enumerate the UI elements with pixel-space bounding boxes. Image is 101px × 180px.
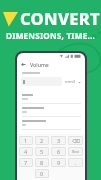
staticText: 0 <box>40 170 44 177</box>
button[interactable]: 9 <box>51 158 66 167</box>
staticText: 9 <box>57 159 61 166</box>
button[interactable]: mm3 <box>65 79 81 85</box>
button[interactable]: 1 <box>19 136 33 145</box>
staticText: 6 <box>57 148 61 155</box>
staticText: ⌫ <box>72 138 80 144</box>
button[interactable] <box>17 91 85 104</box>
staticText: 5 <box>40 148 44 155</box>
staticText: Volume <box>30 61 49 68</box>
button[interactable]: 2 <box>35 136 49 145</box>
button[interactable] <box>17 104 85 117</box>
staticText: Next <box>72 150 79 154</box>
other: Convert app logo <box>2 10 19 27</box>
button[interactable] <box>21 77 62 86</box>
button[interactable]: 3 <box>51 136 66 145</box>
button[interactable]: 8 <box>35 158 49 167</box>
button[interactable]: 7 <box>19 158 33 167</box>
other: Choose unit <box>78 81 81 84</box>
staticText: 2 <box>40 137 44 144</box>
button[interactable]: Next <box>68 147 83 156</box>
staticText: 8 <box>40 159 44 166</box>
button[interactable]: . <box>68 158 83 167</box>
button[interactable]: 5 <box>35 147 49 156</box>
button[interactable]: 6 <box>51 147 66 156</box>
staticText: CONVERT <box>20 7 100 29</box>
button[interactable]: 4 <box>19 147 33 156</box>
other: Back <box>21 62 26 67</box>
staticText: . <box>75 159 77 166</box>
button[interactable]: Back <box>17 59 85 69</box>
button[interactable] <box>17 117 85 130</box>
staticText: 4 <box>24 148 28 155</box>
button[interactable]: Convert app logo <box>2 7 100 29</box>
staticText: 7 <box>24 159 28 166</box>
staticText: 1 <box>24 137 28 144</box>
staticText: DIMENSIONS, TIME... <box>0 30 101 41</box>
staticText: 3 <box>57 137 61 144</box>
button[interactable]: ⌫ <box>68 136 83 145</box>
button[interactable]: 0 <box>35 169 49 178</box>
staticText: mm3 <box>65 79 76 85</box>
